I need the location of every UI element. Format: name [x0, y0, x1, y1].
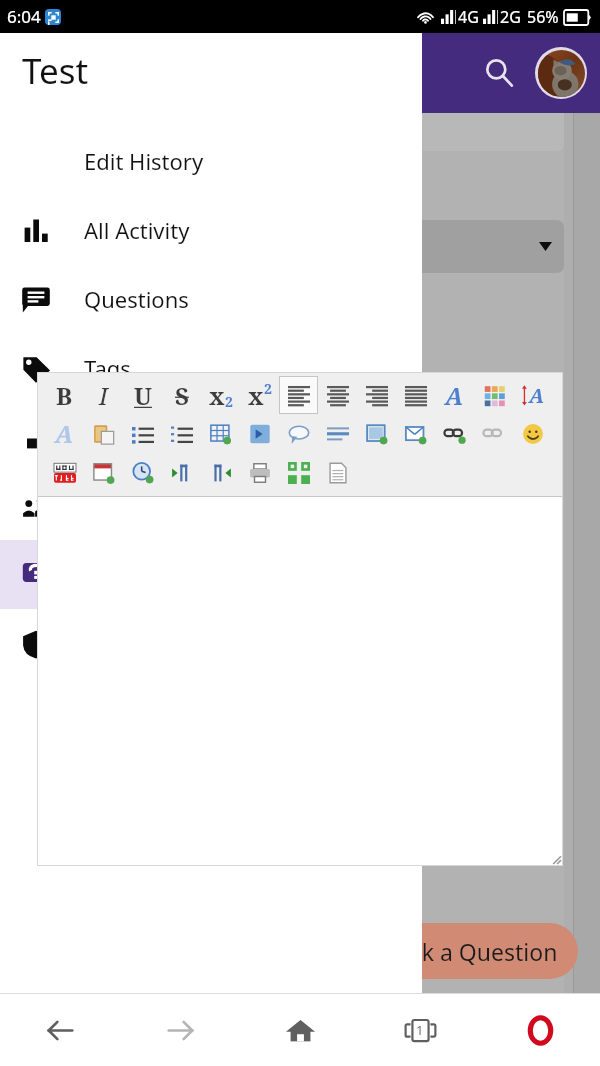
staticText: Users: [84, 491, 143, 521]
staticText: A: [445, 379, 464, 412]
button[interactable]: Ask Question: [0, 540, 422, 609]
staticText: x: [209, 379, 225, 412]
button[interactable]: A: [435, 376, 474, 414]
button[interactable]: [474, 414, 513, 453]
button[interactable]: [240, 453, 279, 492]
button[interactable]: All Activity: [0, 195, 422, 264]
button[interactable]: [474, 376, 513, 414]
staticText: A: [55, 417, 74, 450]
staticText: 56%: [527, 6, 559, 28]
button[interactable]: [123, 414, 162, 453]
button[interactable]: Tags: [0, 333, 422, 402]
button[interactable]: Search: [472, 46, 526, 100]
button[interactable]: Users: [0, 471, 422, 540]
button[interactable]: [279, 414, 318, 453]
button[interactable]: x: [201, 376, 240, 414]
button[interactable]: [84, 414, 123, 453]
staticText: 6:04: [7, 5, 41, 28]
button[interactable]: [396, 414, 435, 453]
button[interactable]: [396, 376, 435, 414]
button[interactable]: Back: [24, 994, 96, 1066]
button[interactable]: [318, 453, 357, 492]
button[interactable]: [45, 453, 84, 492]
staticText: 2: [264, 379, 272, 398]
button[interactable]: [435, 414, 474, 453]
button[interactable]: [162, 453, 201, 492]
staticText: Questions: [84, 284, 189, 314]
staticText: I: [99, 379, 108, 412]
button[interactable]: Tabs: [384, 994, 456, 1066]
button[interactable]: [357, 414, 396, 453]
staticText: A: [529, 382, 545, 409]
staticText: Ask a Question: [396, 936, 558, 967]
staticText: U: [134, 379, 152, 412]
button[interactable]: [513, 414, 552, 453]
button[interactable]: Home: [264, 994, 336, 1066]
button[interactable]: [357, 376, 396, 414]
button[interactable]: B: [45, 376, 84, 414]
button[interactable]: A: [45, 414, 84, 453]
staticText: x: [248, 379, 264, 412]
button[interactable]: [279, 376, 318, 414]
button[interactable]: [250, 220, 564, 273]
staticText: 2: [225, 392, 233, 411]
button[interactable]: x: [240, 376, 279, 414]
button[interactable]: Profile: [534, 46, 588, 100]
button[interactable]: [318, 376, 357, 414]
button[interactable]: Ask a Question: [366, 923, 578, 979]
staticText: Articles: [84, 422, 160, 452]
staticText: Test: [22, 47, 89, 95]
staticText: 1: [416, 1021, 424, 1039]
staticText: 2G: [500, 6, 521, 28]
button[interactable]: Articles: [0, 402, 422, 471]
button[interactable]: [240, 414, 279, 453]
staticText: B: [56, 379, 73, 412]
staticText: Edit History: [84, 146, 204, 176]
button[interactable]: [318, 414, 357, 453]
button[interactable]: [279, 453, 318, 492]
button[interactable]: [84, 453, 123, 492]
button[interactable]: A: [513, 376, 552, 414]
button[interactable]: Edit History: [0, 126, 422, 195]
button[interactable]: Questions: [0, 264, 422, 333]
button[interactable]: [201, 453, 240, 492]
button[interactable]: [201, 414, 240, 453]
button[interactable]: Badges: [0, 609, 422, 678]
button[interactable]: U: [123, 376, 162, 414]
button[interactable]: Opera menu: [504, 994, 576, 1066]
staticText: 4G: [458, 6, 479, 28]
button[interactable]: Forward: [144, 994, 216, 1066]
button[interactable]: S: [162, 376, 201, 414]
staticText: S: [175, 379, 189, 412]
button[interactable]: I: [84, 376, 123, 414]
button[interactable]: [162, 414, 201, 453]
staticText: All Activity: [84, 215, 190, 245]
button[interactable]: [123, 453, 162, 492]
staticText: Tags: [84, 353, 131, 383]
